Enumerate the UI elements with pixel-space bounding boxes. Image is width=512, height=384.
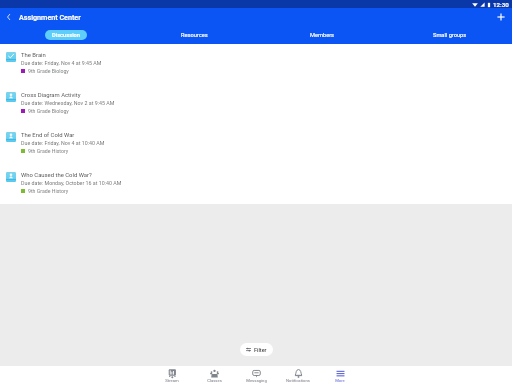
button[interactable]: Small groups [384, 26, 512, 44]
staticText: Due date: Friday, Nov 4 at 10:40 AM [21, 140, 105, 146]
button[interactable]: The Brain [0, 44, 512, 84]
button[interactable]: Messaging [235, 368, 277, 383]
staticText: Small groups [433, 32, 467, 39]
button[interactable]: Who Caused the Cold War? [0, 164, 512, 204]
staticText: The Brain [21, 52, 46, 59]
staticText: Cross Diagram Activity [21, 92, 81, 99]
staticText: 12:30 [493, 1, 509, 8]
staticText: 9th Grade History [28, 188, 69, 194]
staticText: Stream [165, 378, 179, 383]
staticText: Due date: Monday, October 16 at 10:40 AM [21, 180, 122, 186]
button[interactable]: Discussion [0, 26, 128, 44]
button[interactable]: Filter [240, 343, 273, 356]
staticText: Resources [181, 32, 208, 39]
button[interactable]: Resources [128, 26, 256, 44]
staticText: Who Caused the Cold War? [21, 172, 92, 179]
button[interactable]: Notifications [277, 368, 319, 383]
staticText: Filter [254, 347, 267, 353]
staticText: Classes [207, 378, 222, 383]
button[interactable]: More [319, 368, 361, 383]
button[interactable]: Add [492, 8, 512, 26]
button[interactable]: Classes [193, 368, 235, 383]
staticText: The End of Cold War [21, 132, 75, 139]
staticText: Due date: Friday, Nov 4 at 9:45 AM [21, 60, 102, 66]
staticText: Discussion [52, 32, 80, 39]
staticText: 9th Grade History [28, 148, 69, 154]
staticText: Notifications [286, 378, 310, 383]
button[interactable]: The End of Cold War [0, 124, 512, 164]
staticText: Assignment Center [19, 13, 81, 21]
button[interactable]: Back [0, 8, 16, 26]
staticText: Members [310, 32, 335, 39]
button[interactable]: Stream [151, 368, 193, 383]
staticText: Messaging [246, 378, 267, 383]
staticText: 9th Grade Biology [28, 68, 69, 74]
staticText: More [335, 378, 345, 383]
staticText: 9th Grade Biology [28, 108, 69, 114]
button[interactable]: Cross Diagram Activity [0, 84, 512, 124]
button[interactable]: Members [256, 26, 384, 44]
staticText: Due date: Wednesday, Nov 2 at 9:45 AM [21, 100, 115, 106]
